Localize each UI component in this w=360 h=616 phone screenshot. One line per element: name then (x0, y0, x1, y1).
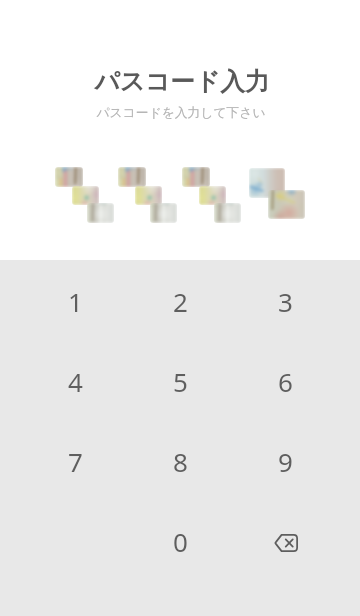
button[interactable]: 9 (233, 421, 338, 501)
staticText: 1 (68, 284, 83, 319)
button[interactable]: 7 (23, 421, 128, 501)
button[interactable]: 3 (233, 261, 338, 341)
button[interactable]: 8 (128, 421, 233, 501)
button[interactable]: 5 (128, 341, 233, 421)
staticText: 7 (68, 444, 83, 479)
staticText: パスコード入力 (94, 66, 270, 97)
button[interactable]: 1 (23, 261, 128, 341)
other: Backspace (274, 534, 298, 552)
button[interactable]: 0 (128, 501, 233, 581)
button[interactable]: 2 (128, 261, 233, 341)
staticText: 0 (173, 524, 188, 559)
staticText: 3 (278, 284, 293, 319)
staticText: 9 (278, 444, 293, 479)
button[interactable]: 4 (23, 341, 128, 421)
staticText: 2 (173, 284, 188, 319)
staticText: 4 (68, 364, 83, 399)
button[interactable]: Backspace (233, 501, 338, 581)
button[interactable]: 6 (233, 341, 338, 421)
staticText: 6 (278, 364, 293, 399)
staticText: 5 (173, 364, 188, 399)
staticText: パスコードを入力して下さい (96, 105, 266, 121)
staticText: 8 (173, 444, 188, 479)
